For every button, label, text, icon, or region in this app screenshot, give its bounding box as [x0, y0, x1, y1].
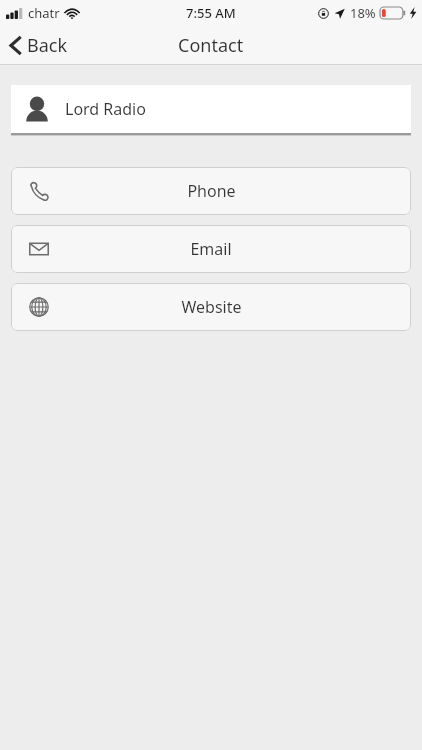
button[interactable]: Lord Radio: [11, 85, 411, 133]
staticText: Lord Radio: [65, 98, 146, 120]
button[interactable]: Back: [0, 29, 78, 62]
staticText: Back: [27, 33, 68, 58]
staticText: chatr: [28, 4, 60, 22]
other: Email: [28, 238, 50, 260]
staticText: Contact: [178, 33, 244, 58]
other: Website: [28, 296, 50, 318]
staticText: Website: [181, 296, 242, 318]
button[interactable]: Email: [11, 225, 411, 273]
staticText: Email: [190, 238, 232, 260]
button[interactable]: Website: [11, 283, 411, 331]
staticText: Phone: [187, 180, 236, 202]
button[interactable]: Phone: [11, 167, 411, 215]
staticText: 7:55 AM: [186, 4, 236, 22]
other: Phone: [28, 180, 50, 202]
staticText: 18%: [350, 4, 376, 22]
